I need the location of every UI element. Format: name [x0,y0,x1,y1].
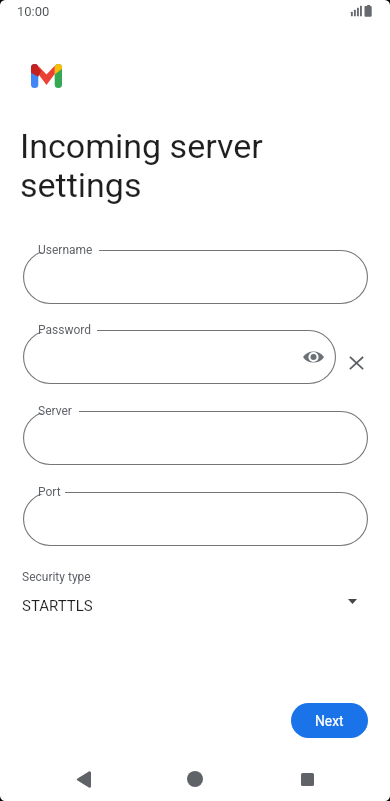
button[interactable]: Back [61,762,105,796]
button[interactable]: Password [23,330,336,384]
button[interactable]: Port [23,492,368,546]
button[interactable]: Clear password [344,351,368,375]
button[interactable]: Home [173,762,217,796]
button[interactable]: Username [23,250,368,304]
staticText: Port [38,485,61,499]
staticText: Server [38,404,72,418]
staticText: STARTTLS [22,597,93,615]
staticText: Password [38,323,92,337]
button[interactable]: Server [23,411,368,465]
staticText: Security type [22,570,91,584]
button[interactable]: Security type [0,566,390,621]
staticText: Username [38,243,93,257]
button[interactable]: Show password [300,344,326,370]
staticText: 10:00 [17,4,50,19]
button[interactable]: Next [291,703,368,738]
button[interactable]: Recent apps [285,762,329,796]
staticText: Next [315,713,344,729]
staticText: Incoming server settings [20,126,263,205]
